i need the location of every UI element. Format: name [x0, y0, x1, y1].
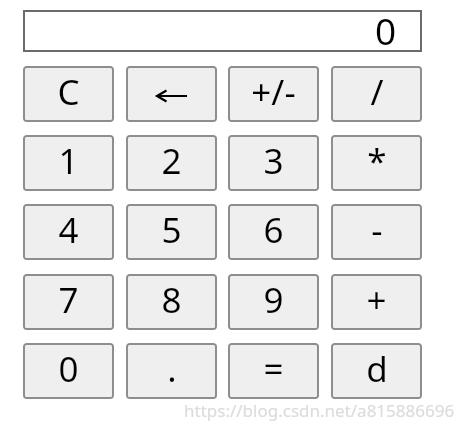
staticText: C: [57, 68, 80, 116]
button[interactable]: 7: [23, 274, 114, 330]
staticText: https://blog.csdn.net/a815886696: [184, 399, 455, 422]
button[interactable]: d: [331, 343, 422, 399]
button[interactable]: 0: [23, 10, 422, 52]
button[interactable]: 5: [126, 204, 217, 260]
button[interactable]: 1: [23, 135, 114, 191]
staticText: 5: [161, 206, 182, 254]
button[interactable]: 6: [228, 204, 319, 260]
button[interactable]: /: [331, 66, 422, 122]
staticText: 7: [58, 276, 79, 324]
staticText: 0: [375, 5, 397, 47]
staticText: 1: [58, 137, 79, 185]
staticText: =: [263, 345, 284, 393]
button[interactable]: 3: [228, 135, 319, 191]
staticText: *: [367, 137, 387, 185]
button[interactable]: .: [126, 343, 217, 399]
button[interactable]: =: [228, 343, 319, 399]
staticText: 6: [263, 206, 284, 254]
staticText: d: [366, 345, 388, 393]
button[interactable]: 8: [126, 274, 217, 330]
button[interactable]: C: [23, 66, 114, 122]
button[interactable]: -: [331, 204, 422, 260]
staticText: 9: [263, 276, 284, 324]
button[interactable]: +/-: [228, 66, 319, 122]
staticText: 2: [161, 137, 182, 185]
button[interactable]: 4: [23, 204, 114, 260]
button[interactable]: +: [331, 274, 422, 330]
button[interactable]: 2: [126, 135, 217, 191]
staticText: 3: [263, 137, 284, 185]
staticText: +: [366, 276, 387, 324]
button[interactable]: *: [331, 135, 422, 191]
staticText: /: [370, 68, 384, 116]
staticText: -: [371, 206, 383, 254]
staticText: 0: [58, 345, 79, 393]
button[interactable]: 0: [23, 343, 114, 399]
button[interactable]: [126, 66, 217, 122]
staticText: 4: [58, 206, 79, 254]
staticText: .: [167, 345, 177, 393]
button[interactable]: 9: [228, 274, 319, 330]
staticText: +/-: [251, 68, 296, 116]
staticText: 8: [161, 276, 182, 324]
